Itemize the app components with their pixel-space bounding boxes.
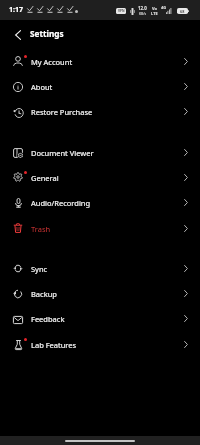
button[interactable]: About bbox=[0, 75, 200, 100]
button[interactable]: General bbox=[0, 166, 200, 191]
staticText: 4G bbox=[161, 5, 167, 10]
staticText: Document Viewer bbox=[31, 148, 94, 158]
button[interactable]: Feedback bbox=[0, 307, 200, 332]
staticText: KB/s bbox=[139, 11, 147, 16]
staticText: VPN bbox=[118, 9, 125, 13]
button[interactable]: Lab Features bbox=[0, 333, 200, 358]
staticText: My Account bbox=[31, 57, 73, 67]
button[interactable]: Backup bbox=[0, 282, 200, 307]
staticText: LTE bbox=[151, 11, 158, 16]
staticText: Lab Features bbox=[31, 340, 77, 350]
staticText: Audio/Recording bbox=[31, 198, 91, 208]
button[interactable]: Document Viewer bbox=[0, 141, 200, 166]
staticText: Settings bbox=[30, 28, 64, 39]
staticText: Restore Purchase bbox=[31, 107, 93, 117]
staticText: 1:17 bbox=[9, 5, 23, 15]
button[interactable]: Audio/Recording bbox=[0, 191, 200, 216]
button[interactable]: Sync bbox=[0, 257, 200, 282]
staticText: 12.0 bbox=[138, 5, 147, 11]
button[interactable]: Trash bbox=[0, 217, 200, 242]
staticText: 68 bbox=[180, 9, 185, 14]
button[interactable]: Back bbox=[9, 26, 27, 44]
staticText: Trash bbox=[31, 224, 51, 234]
staticText: General bbox=[31, 173, 59, 183]
staticText: Feedback bbox=[31, 314, 65, 324]
staticText: About bbox=[31, 82, 53, 92]
staticText: Vo bbox=[152, 6, 158, 11]
staticText: Backup bbox=[31, 289, 57, 299]
staticText: Sync bbox=[31, 264, 48, 274]
button[interactable]: My Account bbox=[0, 50, 200, 75]
button[interactable]: Restore Purchase bbox=[0, 100, 200, 125]
